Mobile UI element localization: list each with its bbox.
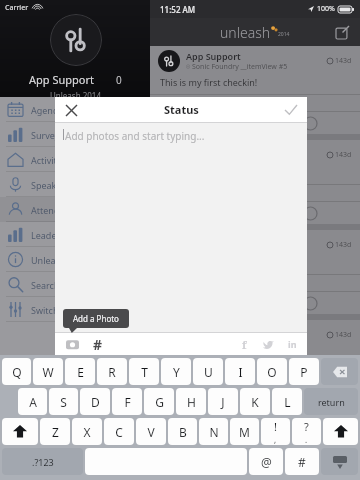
button[interactable]: Hide keyboard <box>321 448 358 475</box>
button[interactable]: X <box>72 418 102 445</box>
button[interactable]: Q <box>2 358 31 385</box>
staticText: App Support <box>29 72 94 87</box>
staticText: F <box>124 394 131 410</box>
staticText: O <box>267 364 277 380</box>
button[interactable]: N <box>199 418 228 445</box>
staticText: A <box>29 394 37 410</box>
staticText: App Support <box>186 50 241 62</box>
staticText: N <box>209 424 219 440</box>
staticText: 0 <box>116 73 122 87</box>
button[interactable]: @ <box>249 448 283 475</box>
button[interactable]: U <box>193 358 223 385</box>
button[interactable]: L <box>272 388 302 415</box>
button[interactable] <box>85 448 247 475</box>
button[interactable]: Activity <box>0 147 150 172</box>
button[interactable]: M <box>230 418 259 445</box>
staticText: 143d <box>335 330 352 340</box>
staticText: .?123 <box>32 456 54 468</box>
button[interactable]: .?123 <box>2 448 83 475</box>
staticText: Carrier <box>5 3 29 13</box>
button[interactable]: C <box>104 418 134 445</box>
staticText: Activity <box>31 154 62 166</box>
staticText: V <box>147 424 155 440</box>
staticText: Agenda <box>31 104 64 116</box>
button[interactable]: ! <box>261 418 290 445</box>
button[interactable]: Add photos and start typing... <box>55 123 307 332</box>
staticText: 143d <box>335 150 352 160</box>
staticText: Unleash <box>31 254 66 266</box>
button[interactable]: S <box>49 388 78 415</box>
button[interactable]: LinkedIn <box>285 337 299 351</box>
staticText: in <box>288 338 297 350</box>
staticText: D <box>91 394 100 410</box>
button[interactable]: Backspace <box>321 358 358 385</box>
button[interactable]: Shift <box>323 418 358 445</box>
staticText: X <box>83 424 91 440</box>
staticText: ! <box>274 419 277 434</box>
button[interactable]: # <box>285 448 319 475</box>
button[interactable]: I <box>225 358 255 385</box>
button[interactable]: Facebook <box>237 337 251 351</box>
staticText: f <box>242 337 247 351</box>
button[interactable]: D <box>80 388 110 415</box>
button[interactable]: P <box>289 358 319 385</box>
button[interactable]: V <box>136 418 166 445</box>
button[interactable]: R <box>97 358 127 385</box>
staticText: , <box>274 434 277 445</box>
staticText: unleash <box>220 23 271 42</box>
staticText: ⌾ Sonic Foundry __itemView #5 <box>186 62 288 72</box>
staticText: . <box>305 434 308 445</box>
button[interactable]: Search <box>0 272 150 297</box>
button[interactable]: Unleash <box>0 247 150 272</box>
button[interactable]: T <box>129 358 159 385</box>
button[interactable]: O <box>257 358 287 385</box>
staticText: Z <box>52 424 59 440</box>
button[interactable]: Survey <box>0 122 150 147</box>
button[interactable]: W <box>33 358 63 385</box>
button[interactable]: G <box>144 388 174 415</box>
button[interactable]: Twitter <box>261 337 275 351</box>
button[interactable]: Submit <box>281 100 301 120</box>
button[interactable]: Y <box>161 358 191 385</box>
button[interactable]: Shift <box>2 418 38 445</box>
staticText: 143d <box>335 56 352 66</box>
button[interactable]: 143d <box>150 140 360 224</box>
staticText: K <box>251 394 259 410</box>
button[interactable]: Speakers <box>0 172 150 197</box>
button[interactable]: F <box>112 388 142 415</box>
button[interactable]: Hashtag <box>89 335 107 353</box>
staticText: J <box>221 394 225 410</box>
button[interactable]: App Support <box>150 46 360 134</box>
staticText: B <box>179 424 187 440</box>
staticText: I <box>238 364 243 380</box>
button[interactable]: Add a Photo <box>63 335 81 353</box>
button[interactable]: Agenda <box>0 97 150 122</box>
staticText: Leaderboard <box>31 229 86 241</box>
button[interactable]: Z <box>40 418 70 445</box>
button[interactable]: Attendees <box>0 197 150 222</box>
button[interactable]: Leaderboard <box>0 222 150 247</box>
button[interactable]: ? <box>292 418 321 445</box>
button[interactable]: J <box>208 388 238 415</box>
staticText: E <box>77 364 84 380</box>
button[interactable]: B <box>168 418 197 445</box>
button[interactable]: 143d <box>150 230 360 314</box>
button[interactable]: 143d <box>150 320 360 404</box>
staticText: R <box>108 364 116 380</box>
staticText: U <box>204 364 213 380</box>
button[interactable]: A <box>18 388 47 415</box>
button[interactable]: E <box>65 358 95 385</box>
button[interactable]: Switch <box>0 297 150 322</box>
button[interactable]: return <box>304 388 358 415</box>
staticText: P <box>300 364 308 380</box>
button[interactable]: Compose <box>332 22 352 42</box>
staticText: G <box>155 394 164 410</box>
staticText: 11:52 AM <box>160 4 196 15</box>
staticText: # <box>298 454 306 470</box>
button[interactable]: H <box>176 388 206 415</box>
button[interactable]: K <box>240 388 270 415</box>
staticText: Unleash 2014 <box>50 90 102 97</box>
staticText: Status <box>164 102 199 117</box>
staticText: Survey <box>31 129 60 141</box>
button[interactable]: Close <box>61 100 81 120</box>
